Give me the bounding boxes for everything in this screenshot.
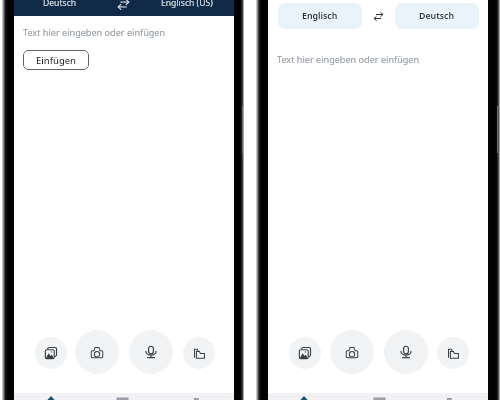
button[interactable]: Conversation tab — [190, 394, 203, 400]
button[interactable]: Gallery — [289, 337, 321, 369]
button[interactable]: Files — [183, 337, 215, 369]
button[interactable]: Englisch (US) — [147, 0, 227, 10]
staticText: Text hier eingeben oder einfügen — [23, 26, 166, 38]
button[interactable]: Camera tab — [116, 394, 129, 400]
button[interactable]: Microphone — [129, 330, 173, 374]
button[interactable]: Gallery — [35, 337, 67, 369]
staticText: Deutsch — [419, 10, 455, 22]
staticText: Einfügen — [36, 54, 76, 67]
staticText: Englisch (US) — [161, 0, 213, 9]
button[interactable]: Camera — [75, 330, 119, 374]
button[interactable]: Microphone — [384, 330, 428, 374]
button[interactable]: Camera — [330, 330, 374, 374]
button[interactable]: Deutsch — [20, 0, 100, 10]
staticText: Text hier eingeben oder einfügen — [277, 53, 420, 65]
button[interactable]: Files — [437, 337, 469, 369]
button[interactable]: Deutsch — [395, 3, 479, 29]
staticText: Englisch — [302, 10, 338, 22]
button[interactable]: Englisch — [278, 3, 362, 29]
button[interactable]: Swap languages — [374, 12, 383, 21]
button[interactable]: Einfügen — [23, 50, 89, 70]
button[interactable]: Translate tab — [295, 393, 313, 400]
staticText: Deutsch — [43, 0, 77, 9]
button[interactable]: Swap languages — [118, 0, 129, 10]
button[interactable]: Camera tab — [373, 394, 386, 400]
button[interactable]: Translate tab — [42, 393, 60, 400]
button[interactable]: Conversation tab — [443, 394, 456, 400]
